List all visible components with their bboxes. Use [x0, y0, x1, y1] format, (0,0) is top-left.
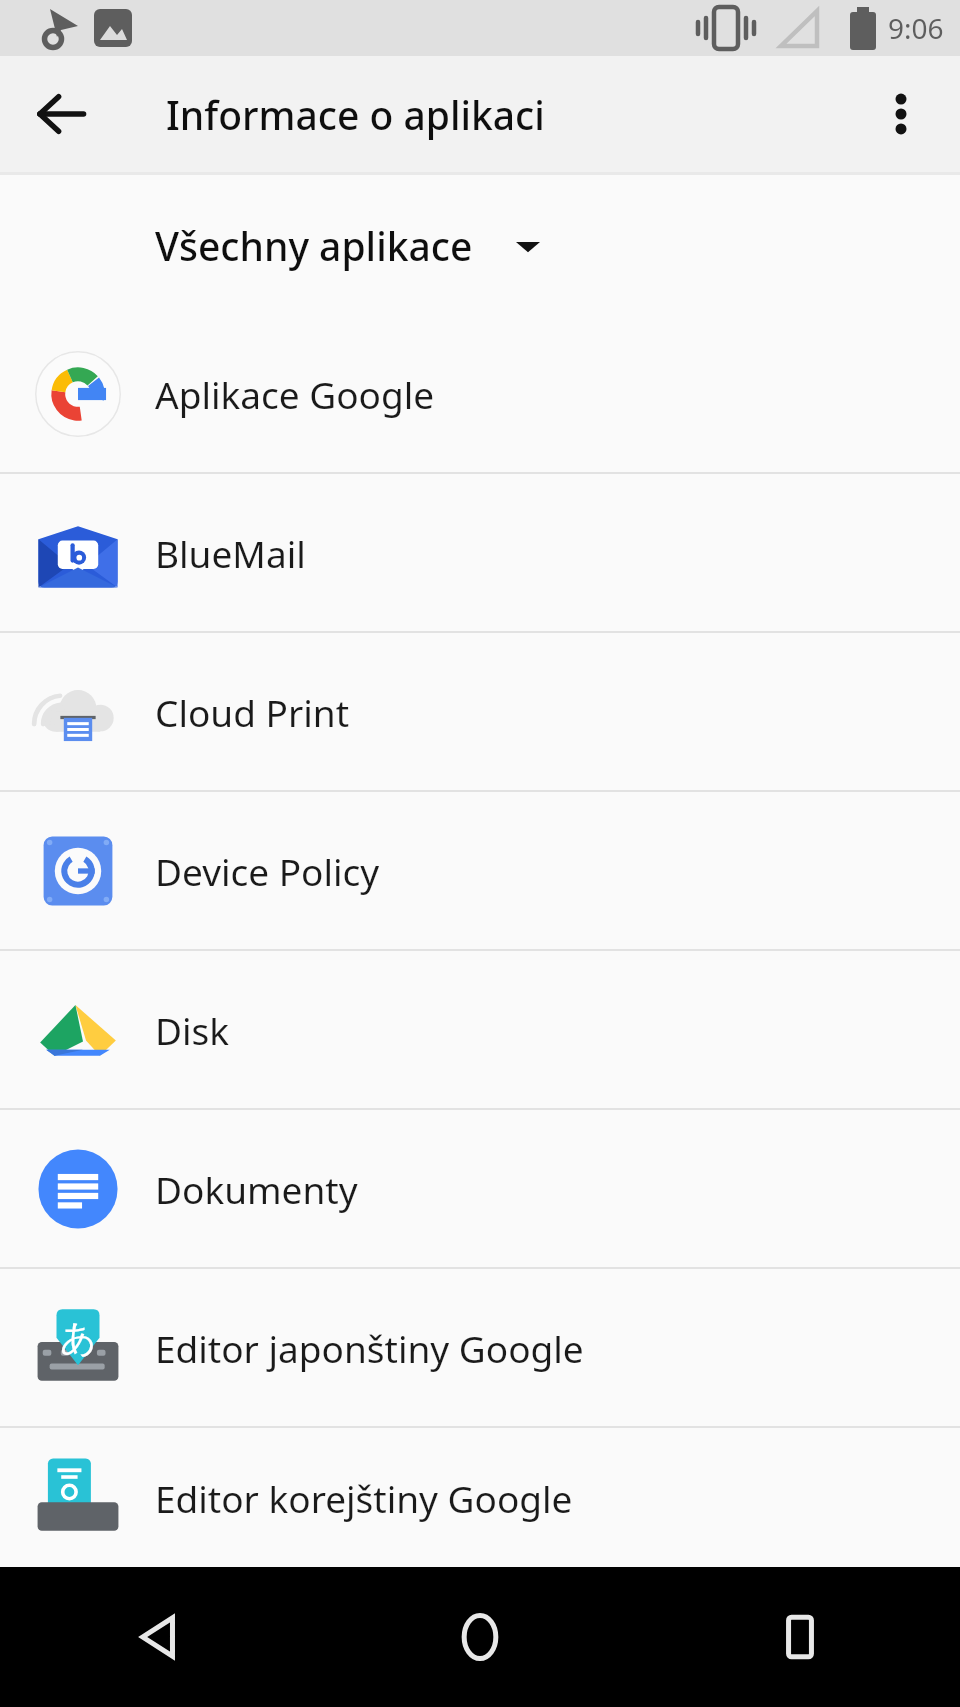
- staticText: Všechny aplikace: [155, 219, 473, 272]
- button[interactable]: Disk: [0, 951, 960, 1108]
- button[interactable]: Back: [0, 1567, 320, 1707]
- button[interactable]: Device Policy: [0, 792, 960, 949]
- staticText: Informace o aplikaci: [166, 88, 545, 141]
- button[interactable]: Recent apps: [640, 1567, 960, 1707]
- button[interactable]: More options: [862, 75, 940, 153]
- staticText: Dokumenty: [155, 1164, 358, 1214]
- staticText: Editor japonštiny Google: [155, 1323, 584, 1373]
- button[interactable]: Všechny aplikace: [0, 175, 960, 315]
- button[interactable]: Editor korejštiny Google: [0, 1428, 960, 1567]
- staticText: BlueMail: [155, 528, 306, 578]
- button[interactable]: Back: [22, 75, 100, 153]
- button[interactable]: BlueMail: [0, 474, 960, 631]
- staticText: Disk: [155, 1005, 230, 1055]
- staticText: Editor korejštiny Google: [155, 1473, 573, 1523]
- button[interactable]: Home: [320, 1567, 640, 1707]
- staticText: Aplikace Google: [155, 369, 435, 419]
- button[interactable]: あ: [0, 1269, 960, 1426]
- button[interactable]: Dokumenty: [0, 1110, 960, 1267]
- button[interactable]: Aplikace Google: [0, 315, 960, 472]
- staticText: Device Policy: [155, 846, 380, 896]
- staticText: あ: [60, 1315, 97, 1360]
- staticText: 9:06: [888, 9, 944, 47]
- staticText: Cloud Print: [155, 687, 349, 737]
- button[interactable]: Cloud Print: [0, 633, 960, 790]
